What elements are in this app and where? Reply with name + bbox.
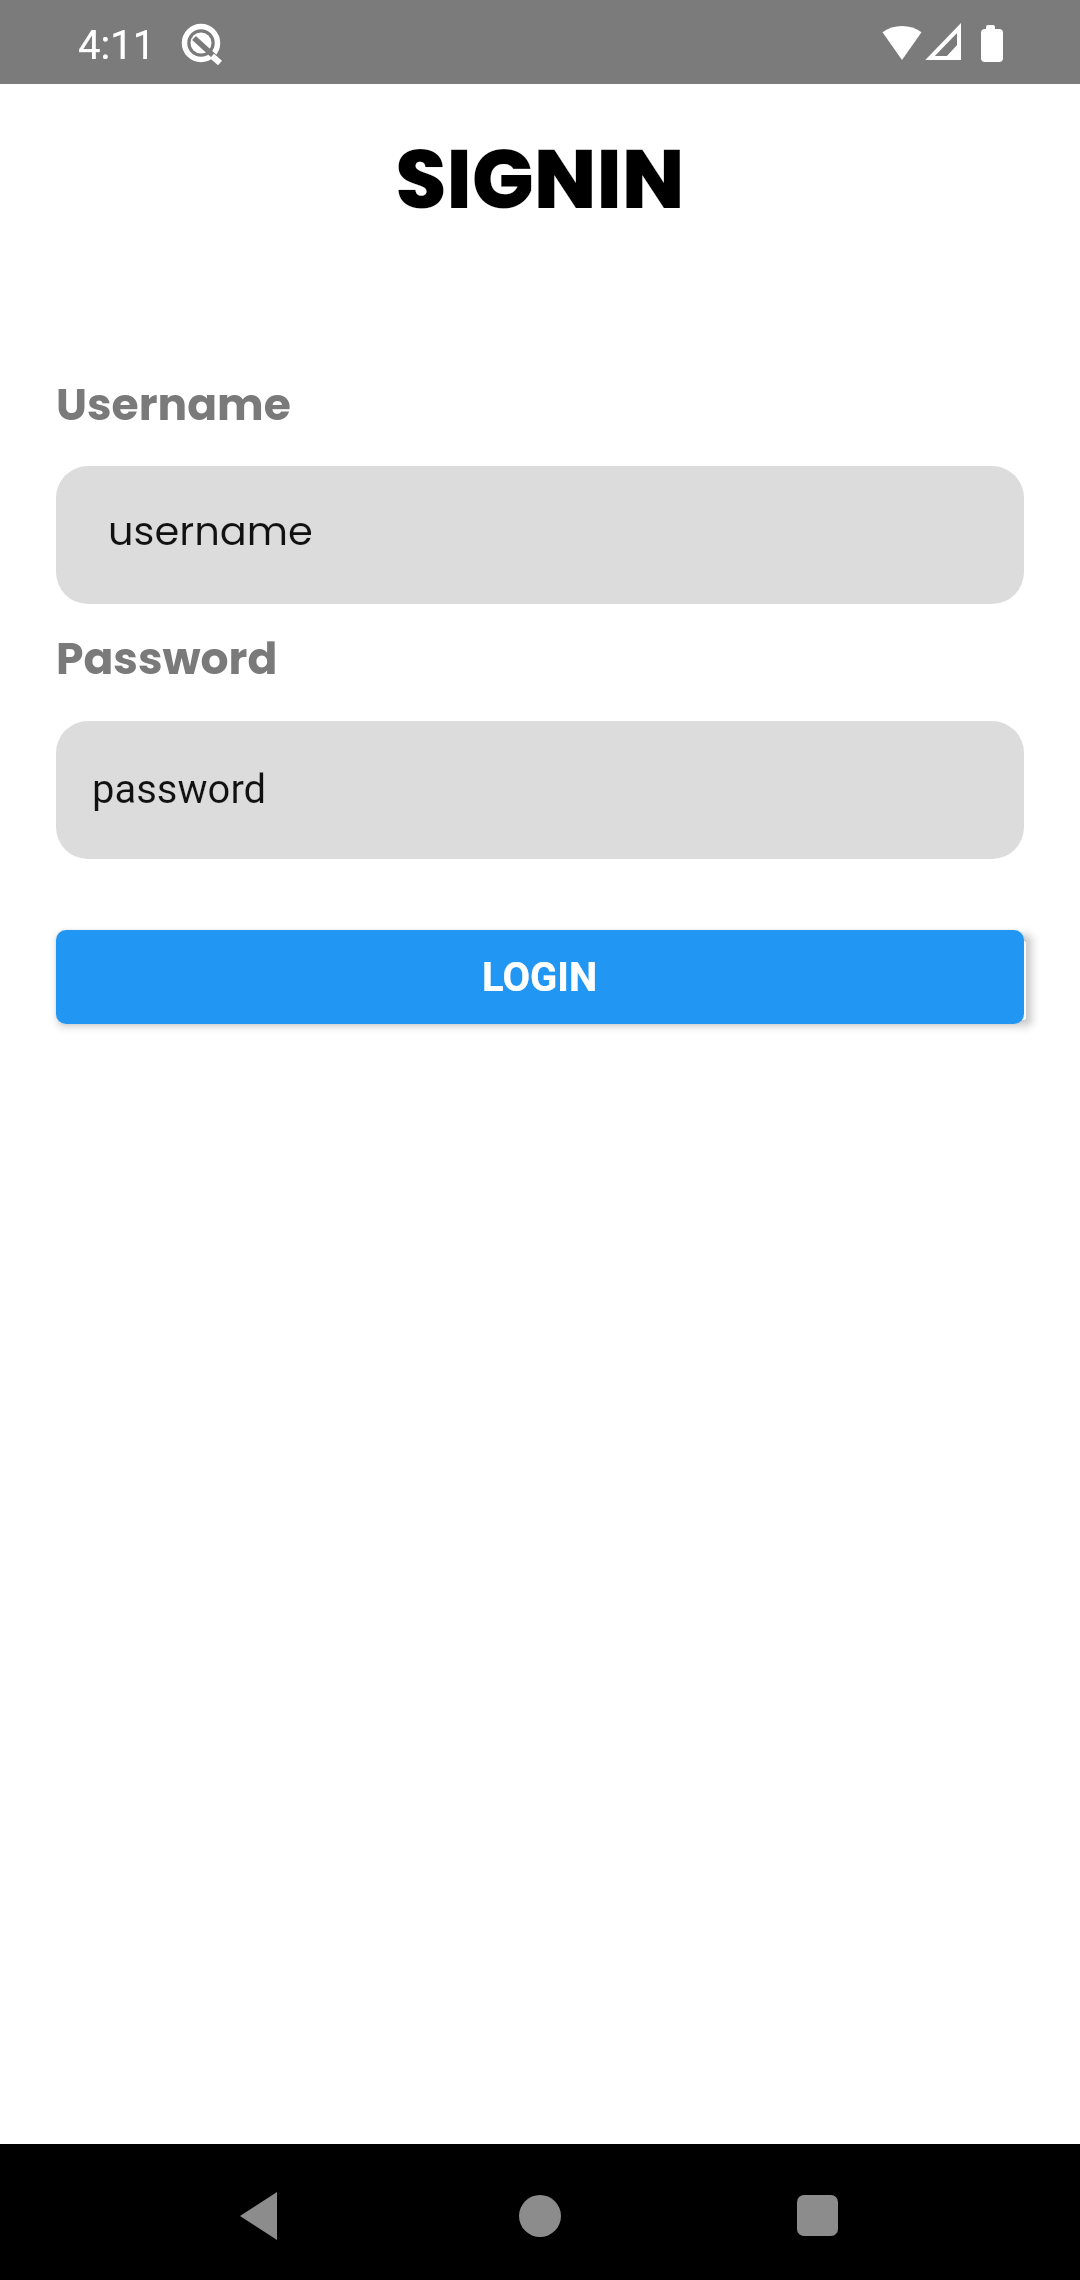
button[interactable] bbox=[788, 2180, 848, 2252]
button[interactable] bbox=[228, 2180, 288, 2252]
button[interactable]: LOGIN bbox=[56, 930, 1024, 1024]
staticText: Password bbox=[56, 628, 278, 690]
button[interactable]: username bbox=[56, 466, 1024, 604]
staticText: SIGNIN bbox=[0, 122, 1080, 237]
staticText: username bbox=[108, 503, 313, 559]
staticText: LOGIN bbox=[482, 954, 598, 1001]
staticText: Username bbox=[56, 374, 291, 436]
staticText: 4:11 bbox=[78, 22, 156, 69]
button[interactable] bbox=[510, 2180, 570, 2252]
staticText: password bbox=[92, 766, 267, 813]
button[interactable]: password bbox=[56, 721, 1024, 859]
